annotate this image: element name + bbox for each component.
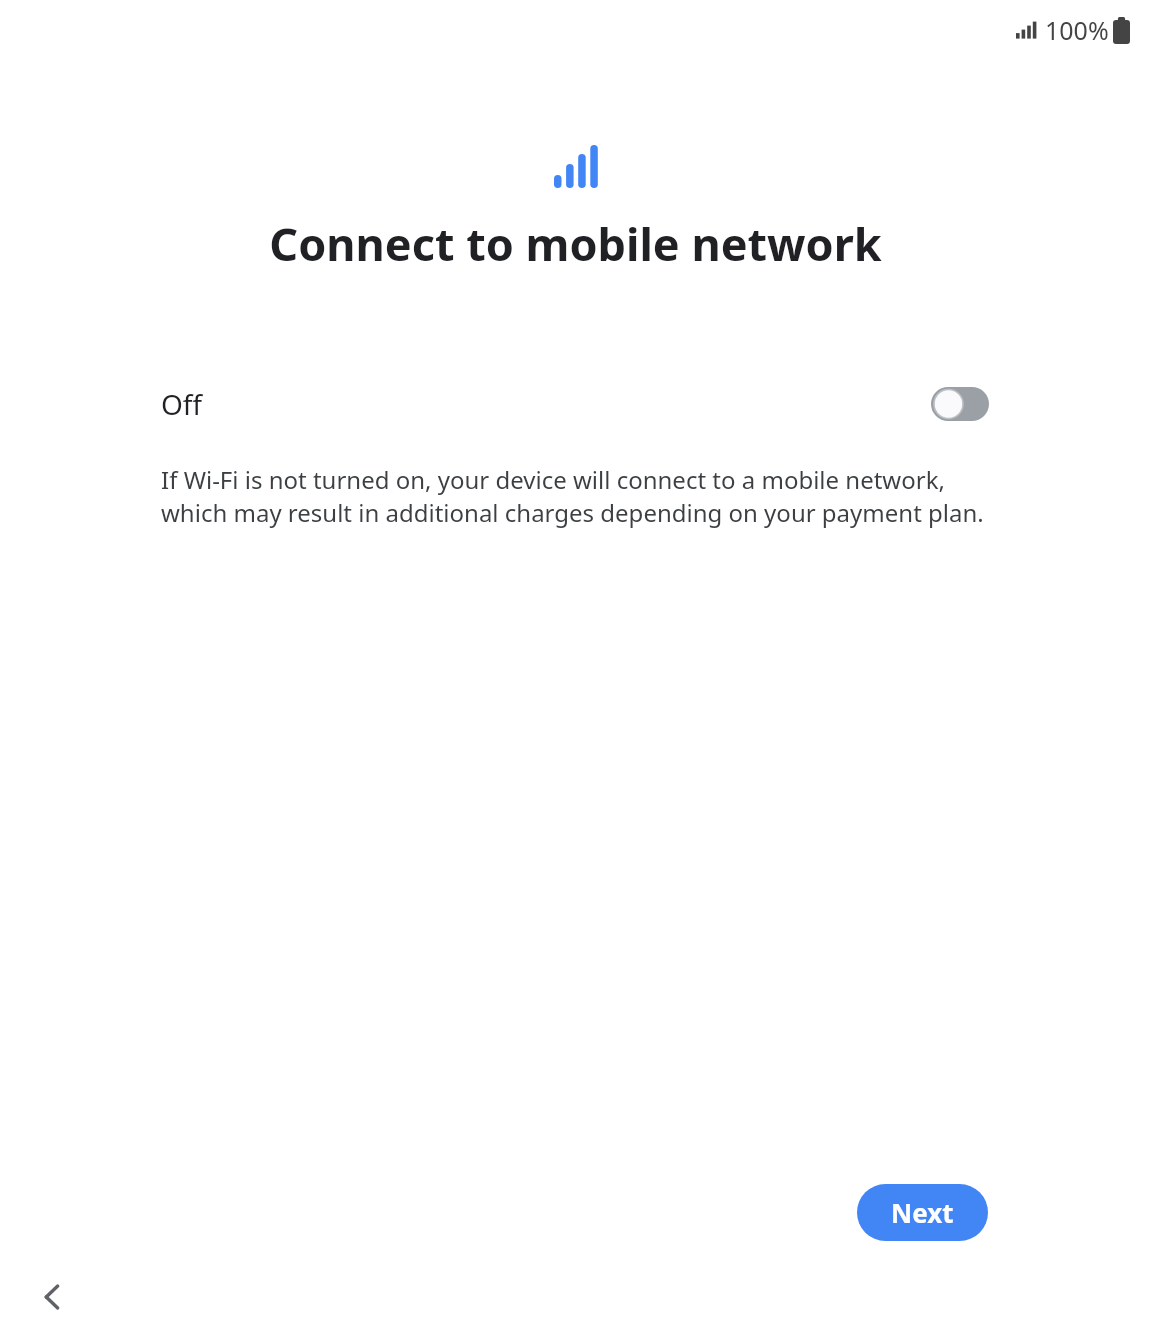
staticText: If Wi-Fi is not turned on, your device w…	[161, 463, 991, 529]
staticText: 100%	[1045, 13, 1109, 47]
button[interactable]: Back	[22, 1266, 84, 1328]
staticText: Next	[891, 1195, 954, 1230]
button[interactable]: Off	[0, 369, 1151, 439]
button[interactable]: Mobile network toggle, off	[931, 387, 989, 421]
staticText: Off	[161, 385, 203, 423]
button[interactable]: Next	[857, 1184, 988, 1241]
staticText: Connect to mobile network	[269, 213, 882, 274]
